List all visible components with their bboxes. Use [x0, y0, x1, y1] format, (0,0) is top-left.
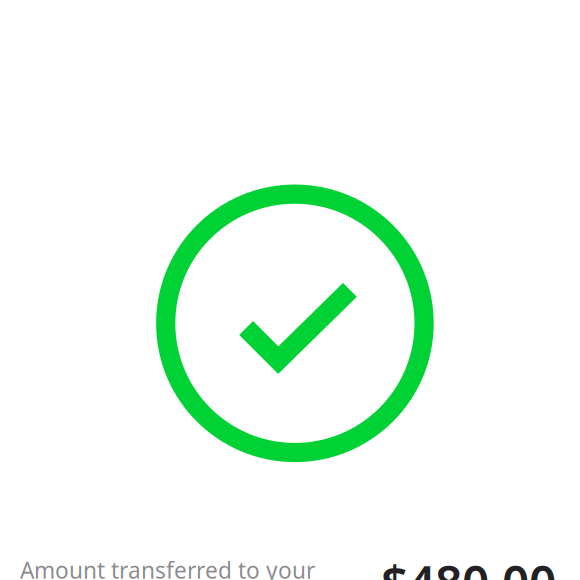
staticText: $480.00	[381, 551, 556, 580]
staticText: Amount transferred to your account	[20, 555, 315, 580]
